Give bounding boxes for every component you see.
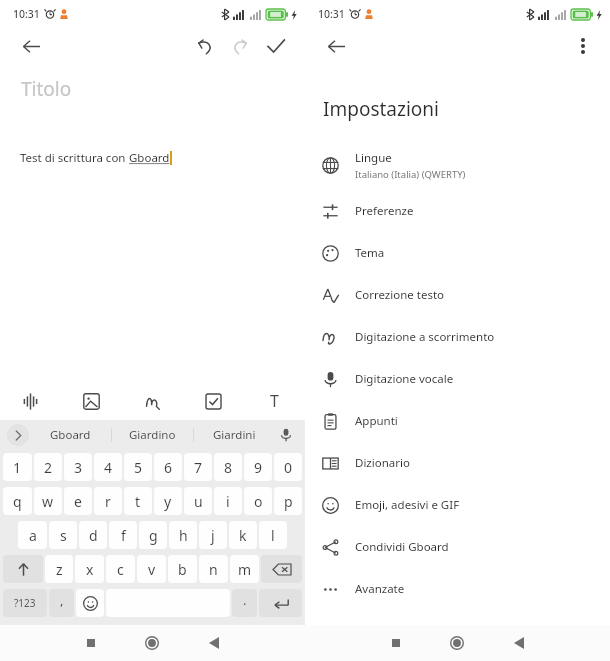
- staticText: h: [179, 526, 188, 545]
- button[interactable]: u: [184, 487, 212, 515]
- button[interactable]: More: [7, 424, 29, 446]
- button[interactable]: s: [49, 521, 77, 549]
- button[interactable]: l: [259, 521, 287, 549]
- button[interactable]: Giardino: [112, 420, 193, 450]
- button[interactable]: p: [274, 487, 302, 515]
- button[interactable]: f: [109, 521, 137, 549]
- button[interactable]: Backspace: [261, 555, 302, 583]
- button[interactable]: 7: [184, 453, 212, 481]
- staticText: 8: [224, 458, 233, 477]
- button[interactable]: 2: [34, 453, 62, 481]
- button[interactable]: c: [106, 555, 135, 583]
- button[interactable]: Checklist: [183, 382, 244, 420]
- button[interactable]: i: [214, 487, 242, 515]
- button[interactable]: Digitazione a scorrimento: [305, 316, 610, 358]
- button[interactable]: z: [45, 555, 73, 583]
- button[interactable]: Home: [121, 625, 183, 661]
- button[interactable]: Digitazione vocale: [305, 358, 610, 400]
- button[interactable]: j: [199, 521, 227, 549]
- button[interactable]: d: [79, 521, 107, 549]
- button[interactable]: e: [64, 487, 92, 515]
- button[interactable]: Back: [488, 625, 550, 661]
- button[interactable]: y: [154, 487, 182, 515]
- staticText: g: [149, 526, 158, 545]
- button[interactable]: t: [124, 487, 152, 515]
- button[interactable]: Undo: [189, 31, 219, 61]
- button[interactable]: Preferenze: [305, 190, 610, 232]
- button[interactable]: Home: [426, 625, 488, 661]
- button[interactable]: Correzione testo: [305, 274, 610, 316]
- button[interactable]: k: [229, 521, 257, 549]
- button[interactable]: 5: [124, 453, 152, 481]
- button[interactable]: 9: [244, 453, 272, 481]
- button[interactable]: b: [168, 555, 197, 583]
- button[interactable]: h: [169, 521, 197, 549]
- staticText: Gboard: [129, 150, 170, 166]
- button[interactable]: 4: [94, 453, 122, 481]
- staticText: Tema: [355, 245, 385, 261]
- button[interactable]: a: [18, 521, 47, 549]
- staticText: k: [239, 526, 247, 545]
- button[interactable]: r: [94, 487, 122, 515]
- button[interactable]: 6: [154, 453, 182, 481]
- button[interactable]: Avanzate: [305, 568, 610, 610]
- button[interactable]: Recents: [365, 625, 426, 661]
- button[interactable]: 8: [214, 453, 242, 481]
- button[interactable]: q: [3, 487, 32, 515]
- staticText: e: [74, 492, 82, 511]
- staticText: r: [105, 492, 111, 511]
- button[interactable]: Enter: [259, 589, 302, 617]
- button[interactable]: 1: [3, 453, 32, 481]
- button[interactable]: Back: [16, 31, 46, 61]
- button[interactable]: Draw: [122, 382, 183, 420]
- button[interactable]: w: [34, 487, 62, 515]
- staticText: Avanzate: [355, 581, 405, 597]
- button[interactable]: More options: [568, 31, 598, 61]
- staticText: Test di scrittura con: [20, 150, 129, 166]
- button[interactable]: o: [244, 487, 272, 515]
- button[interactable]: 3: [64, 453, 92, 481]
- button[interactable]: Voice: [0, 382, 61, 420]
- staticText: 10:31: [318, 7, 345, 21]
- button[interactable]: Voice input: [275, 424, 297, 446]
- staticText: T: [270, 390, 279, 412]
- button[interactable]: Emoji: [76, 589, 104, 617]
- staticText: Impostazioni: [323, 96, 439, 122]
- button[interactable]: Gboard: [30, 420, 111, 450]
- staticText: s: [60, 526, 67, 545]
- button[interactable]: Condividi Gboard: [305, 526, 610, 568]
- button[interactable]: Dizionario: [305, 442, 610, 484]
- button[interactable]: g: [139, 521, 167, 549]
- button[interactable]: Back: [183, 625, 245, 661]
- button[interactable]: Lingue: [305, 140, 610, 190]
- staticText: Condividi Gboard: [355, 539, 449, 555]
- staticText: b: [178, 560, 187, 579]
- button[interactable]: x: [75, 555, 104, 583]
- button[interactable]: Text: [244, 382, 305, 420]
- staticText: ,: [60, 591, 64, 609]
- button[interactable]: 0: [274, 453, 302, 481]
- button[interactable]: Recents: [60, 625, 121, 661]
- button[interactable]: n: [199, 555, 228, 583]
- staticText: Preferenze: [355, 203, 414, 219]
- button[interactable]: Appunti: [305, 400, 610, 442]
- button[interactable]: Image: [61, 382, 122, 420]
- button[interactable]: Tema: [305, 232, 610, 274]
- staticText: 2: [44, 458, 53, 477]
- button[interactable]: Period: [232, 589, 257, 617]
- staticText: Dizionario: [355, 455, 410, 471]
- button[interactable]: v: [137, 555, 166, 583]
- staticText: c: [117, 560, 124, 579]
- button[interactable]: Giardini: [194, 420, 275, 450]
- button[interactable]: Back: [321, 31, 351, 61]
- button[interactable]: Shift: [3, 555, 43, 583]
- button[interactable]: Symbols: [3, 589, 47, 617]
- button[interactable]: Comma: [49, 589, 74, 617]
- button[interactable]: Done: [261, 31, 291, 61]
- button[interactable]: m: [230, 555, 259, 583]
- staticText: 9: [254, 458, 263, 477]
- button[interactable]: Emoji, adesivi e GIF: [305, 484, 610, 526]
- button[interactable]: Redo: [225, 31, 255, 61]
- staticText: Giardino: [129, 427, 176, 443]
